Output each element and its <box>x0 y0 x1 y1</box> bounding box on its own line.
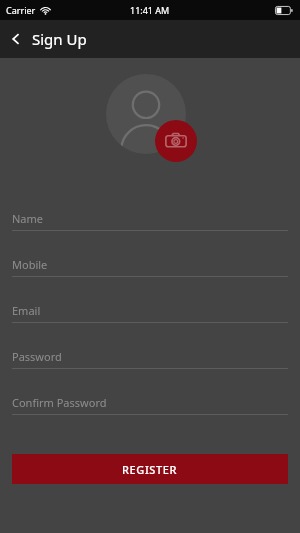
button[interactable]: Change photo <box>155 120 197 162</box>
staticText: Confirm Password <box>12 395 107 410</box>
button[interactable]: Confirm Password <box>0 390 300 436</box>
button[interactable]: Name <box>0 206 300 252</box>
staticText: Password <box>12 349 62 364</box>
staticText: Mobile <box>12 257 48 272</box>
staticText: Name <box>12 211 44 226</box>
button[interactable]: Profile photo <box>106 74 186 154</box>
staticText: 11:41 AM <box>130 4 170 16</box>
button[interactable]: REGISTER <box>12 454 288 484</box>
staticText: Email <box>12 303 41 318</box>
button[interactable]: Mobile <box>0 252 300 298</box>
button[interactable]: Email <box>0 298 300 344</box>
staticText: REGISTER <box>122 462 178 477</box>
staticText: Carrier <box>6 4 36 16</box>
other: Back <box>8 31 24 47</box>
button[interactable]: Password <box>0 344 300 390</box>
staticText: Sign Up <box>32 29 87 49</box>
button[interactable]: Back <box>0 23 99 55</box>
